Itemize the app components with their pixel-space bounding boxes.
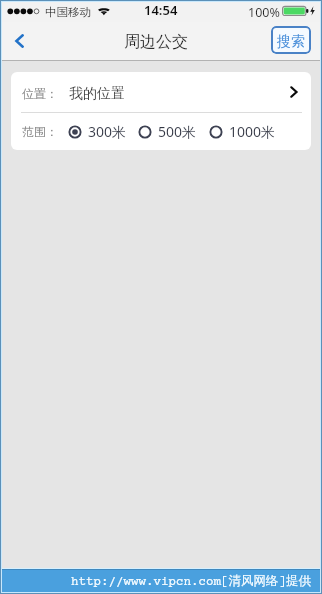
button[interactable]: 搜索: [271, 26, 311, 54]
staticText: 位置：: [22, 86, 58, 101]
staticText: 周边公交: [124, 32, 188, 52]
staticText: 14:54: [144, 1, 178, 19]
staticText: 范围：: [22, 124, 58, 139]
staticText: 100%: [248, 4, 280, 21]
staticText: 300米: [88, 122, 127, 141]
button[interactable]: 300米: [68, 122, 127, 141]
staticText: 500米: [158, 122, 197, 141]
button[interactable]: 500米: [138, 122, 197, 141]
staticText: 搜索: [277, 33, 305, 51]
staticText: 中国移动: [45, 5, 91, 19]
staticText: http://www.vipcn.com[清风网络]提供: [71, 573, 311, 589]
button[interactable]: 1000米: [209, 122, 276, 141]
button[interactable]: 返回: [0, 22, 42, 60]
button[interactable]: 位置：: [11, 72, 311, 112]
staticText: 1000米: [229, 122, 276, 141]
staticText: 我的位置: [69, 85, 125, 103]
